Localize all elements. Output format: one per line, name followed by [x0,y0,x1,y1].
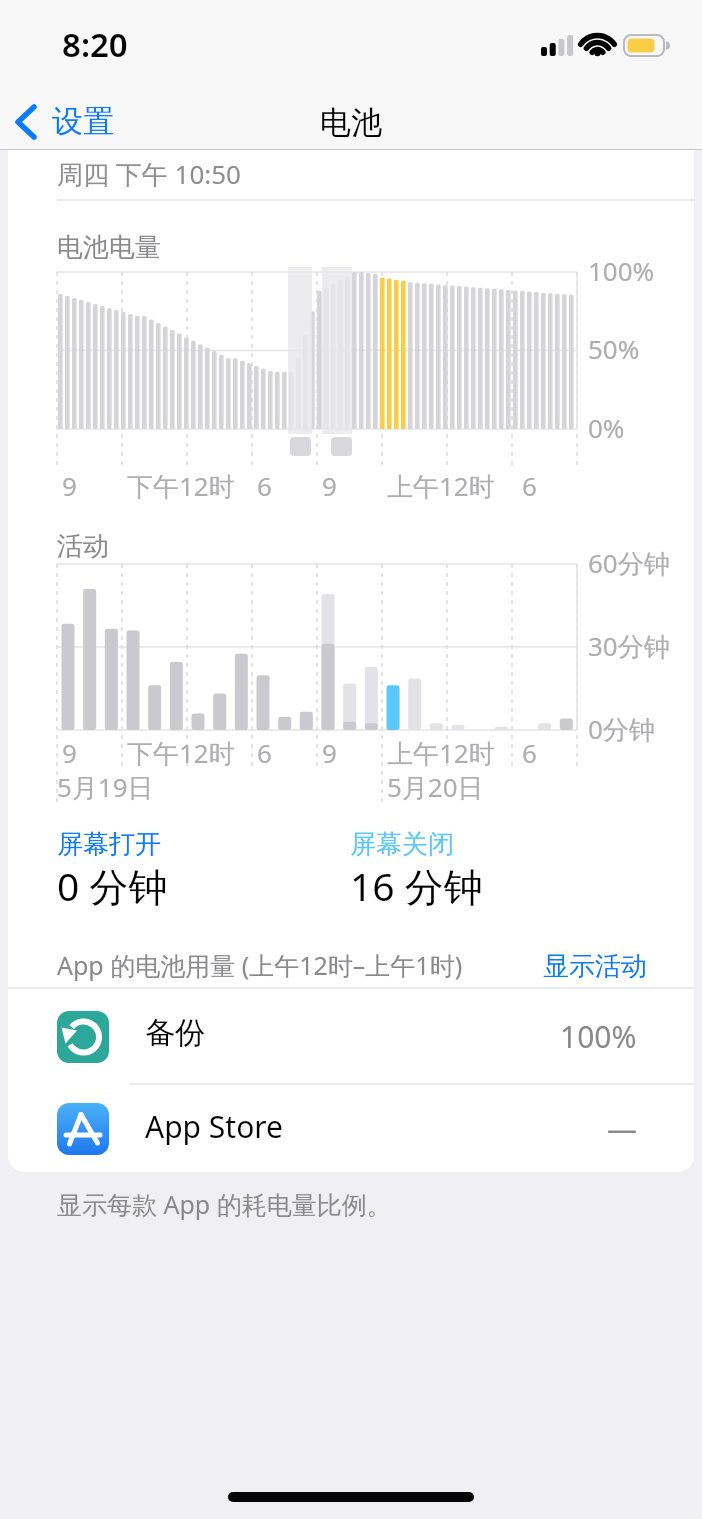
staticText: 0 分钟 [57,859,168,912]
staticText: 60分钟 [588,545,670,581]
staticText: 9 [62,468,77,503]
staticText: 8:20 [62,22,128,67]
button[interactable]: App Store [8,1085,694,1172]
staticText: 设置 [52,102,114,141]
staticText: 下午12时 [127,735,235,771]
button[interactable]: 设置 [10,95,114,147]
staticText: 9 [62,735,77,770]
staticText: 6 [257,468,272,503]
staticText: 电池 [320,103,382,142]
staticText: 6 [257,735,272,770]
staticText: 9 [322,468,337,503]
staticText: 6 [522,735,537,770]
staticText: 活动 [57,530,109,563]
staticText: 5月20日 [387,769,484,805]
staticText: 上午12时 [387,468,495,504]
staticText: 6 [522,468,537,503]
staticText: 30分钟 [588,628,670,664]
button[interactable]: 显示活动 [512,942,647,990]
staticText: 显示活动 [543,950,647,983]
staticText: 50% [588,331,640,366]
staticText: 100% [588,253,655,288]
staticText: App 的电池用量 (上午12时–上午1时) [57,948,463,982]
staticText: 0% [588,410,625,445]
staticText: 5月19日 [57,769,154,805]
button[interactable]: 备份 [8,989,694,1084]
staticText: App Store [145,1106,284,1147]
staticText: 100% [560,1016,637,1057]
staticText: 周四 下午 10:50 [57,156,241,192]
staticText: 9 [322,735,337,770]
staticText: 下午12时 [127,468,235,504]
staticText: 屏幕打开 [57,828,161,861]
staticText: 电池电量 [57,231,161,264]
staticText: 屏幕关闭 [350,828,454,861]
staticText: 16 分钟 [350,859,483,912]
staticText: 0分钟 [588,711,655,747]
staticText: 上午12时 [387,735,495,771]
staticText: 备份 [145,1014,205,1052]
staticText: — [607,1108,637,1149]
staticText: 显示每款 App 的耗电量比例。 [57,1187,392,1221]
